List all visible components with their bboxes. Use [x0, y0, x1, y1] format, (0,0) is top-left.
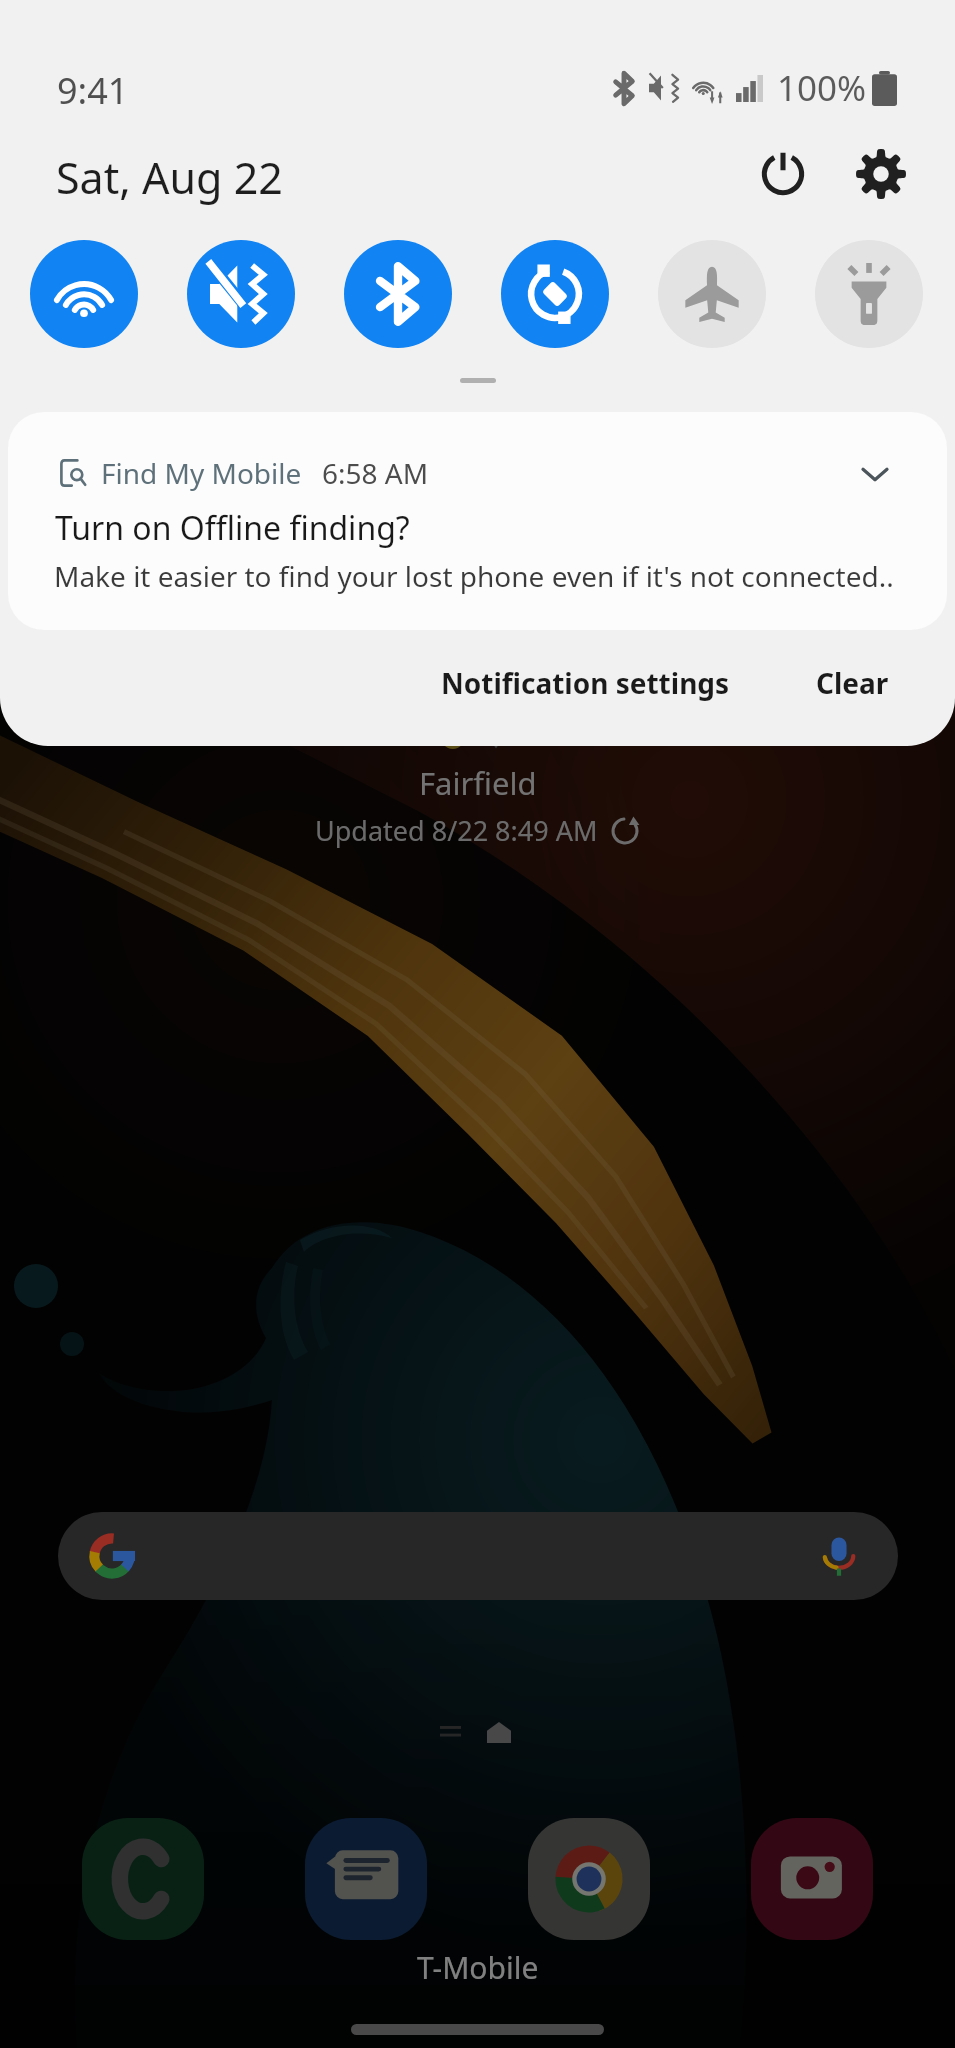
button[interactable]: Flashlight [815, 240, 923, 348]
staticText: T-Mobile [417, 1947, 539, 1988]
staticText: Notification settings [441, 664, 730, 702]
staticText: Turn on Offline finding? [55, 506, 410, 550]
staticText: Make it easier to find your lost phone e… [54, 557, 894, 595]
button[interactable]: Clear [806, 652, 899, 714]
button[interactable]: Bluetooth [344, 240, 452, 348]
button[interactable]: App list page [440, 1723, 461, 1742]
button[interactable]: Sound off [187, 240, 295, 348]
button[interactable]: Weather widget [315, 762, 640, 849]
button[interactable]: Google search [58, 1512, 898, 1600]
staticText: Fairfield [419, 762, 537, 804]
staticText: Sat, Aug 22 [56, 148, 283, 207]
button[interactable]: Settings [845, 138, 917, 210]
staticText: 6:58 AM [322, 454, 429, 492]
button[interactable]: Notification settings [431, 652, 740, 714]
button[interactable]: Home page [487, 1722, 511, 1743]
button[interactable]: Airplane mode [658, 240, 766, 348]
staticText: Find My Mobile [101, 454, 302, 492]
staticText: 100% [777, 64, 867, 112]
button[interactable]: Power off [747, 138, 819, 210]
button[interactable]: Wi-Fi [30, 240, 138, 348]
button[interactable]: Expand notification [847, 446, 903, 502]
staticText: 9:41 [57, 66, 129, 115]
staticText: Clear [816, 664, 889, 702]
button[interactable]: Auto rotate [501, 240, 609, 348]
button[interactable]: Find My Mobile [8, 412, 947, 630]
button[interactable]: Phone [82, 1818, 204, 1940]
staticText: Updated 8/22 8:49 AM [315, 812, 598, 849]
button[interactable]: Chrome [528, 1818, 650, 1940]
button[interactable]: Messages [305, 1818, 427, 1940]
button[interactable]: Camera [751, 1818, 873, 1940]
